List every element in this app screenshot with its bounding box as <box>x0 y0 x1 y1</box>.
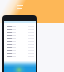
button[interactable] <box>4 43 36 46</box>
button[interactable] <box>4 46 36 49</box>
button[interactable] <box>4 55 36 58</box>
button[interactable] <box>4 52 36 55</box>
button[interactable] <box>4 34 36 37</box>
button[interactable] <box>4 49 36 52</box>
button[interactable] <box>4 40 36 43</box>
button[interactable] <box>4 25 36 28</box>
button[interactable] <box>4 31 36 34</box>
button[interactable] <box>4 37 36 40</box>
button[interactable] <box>4 28 36 31</box>
